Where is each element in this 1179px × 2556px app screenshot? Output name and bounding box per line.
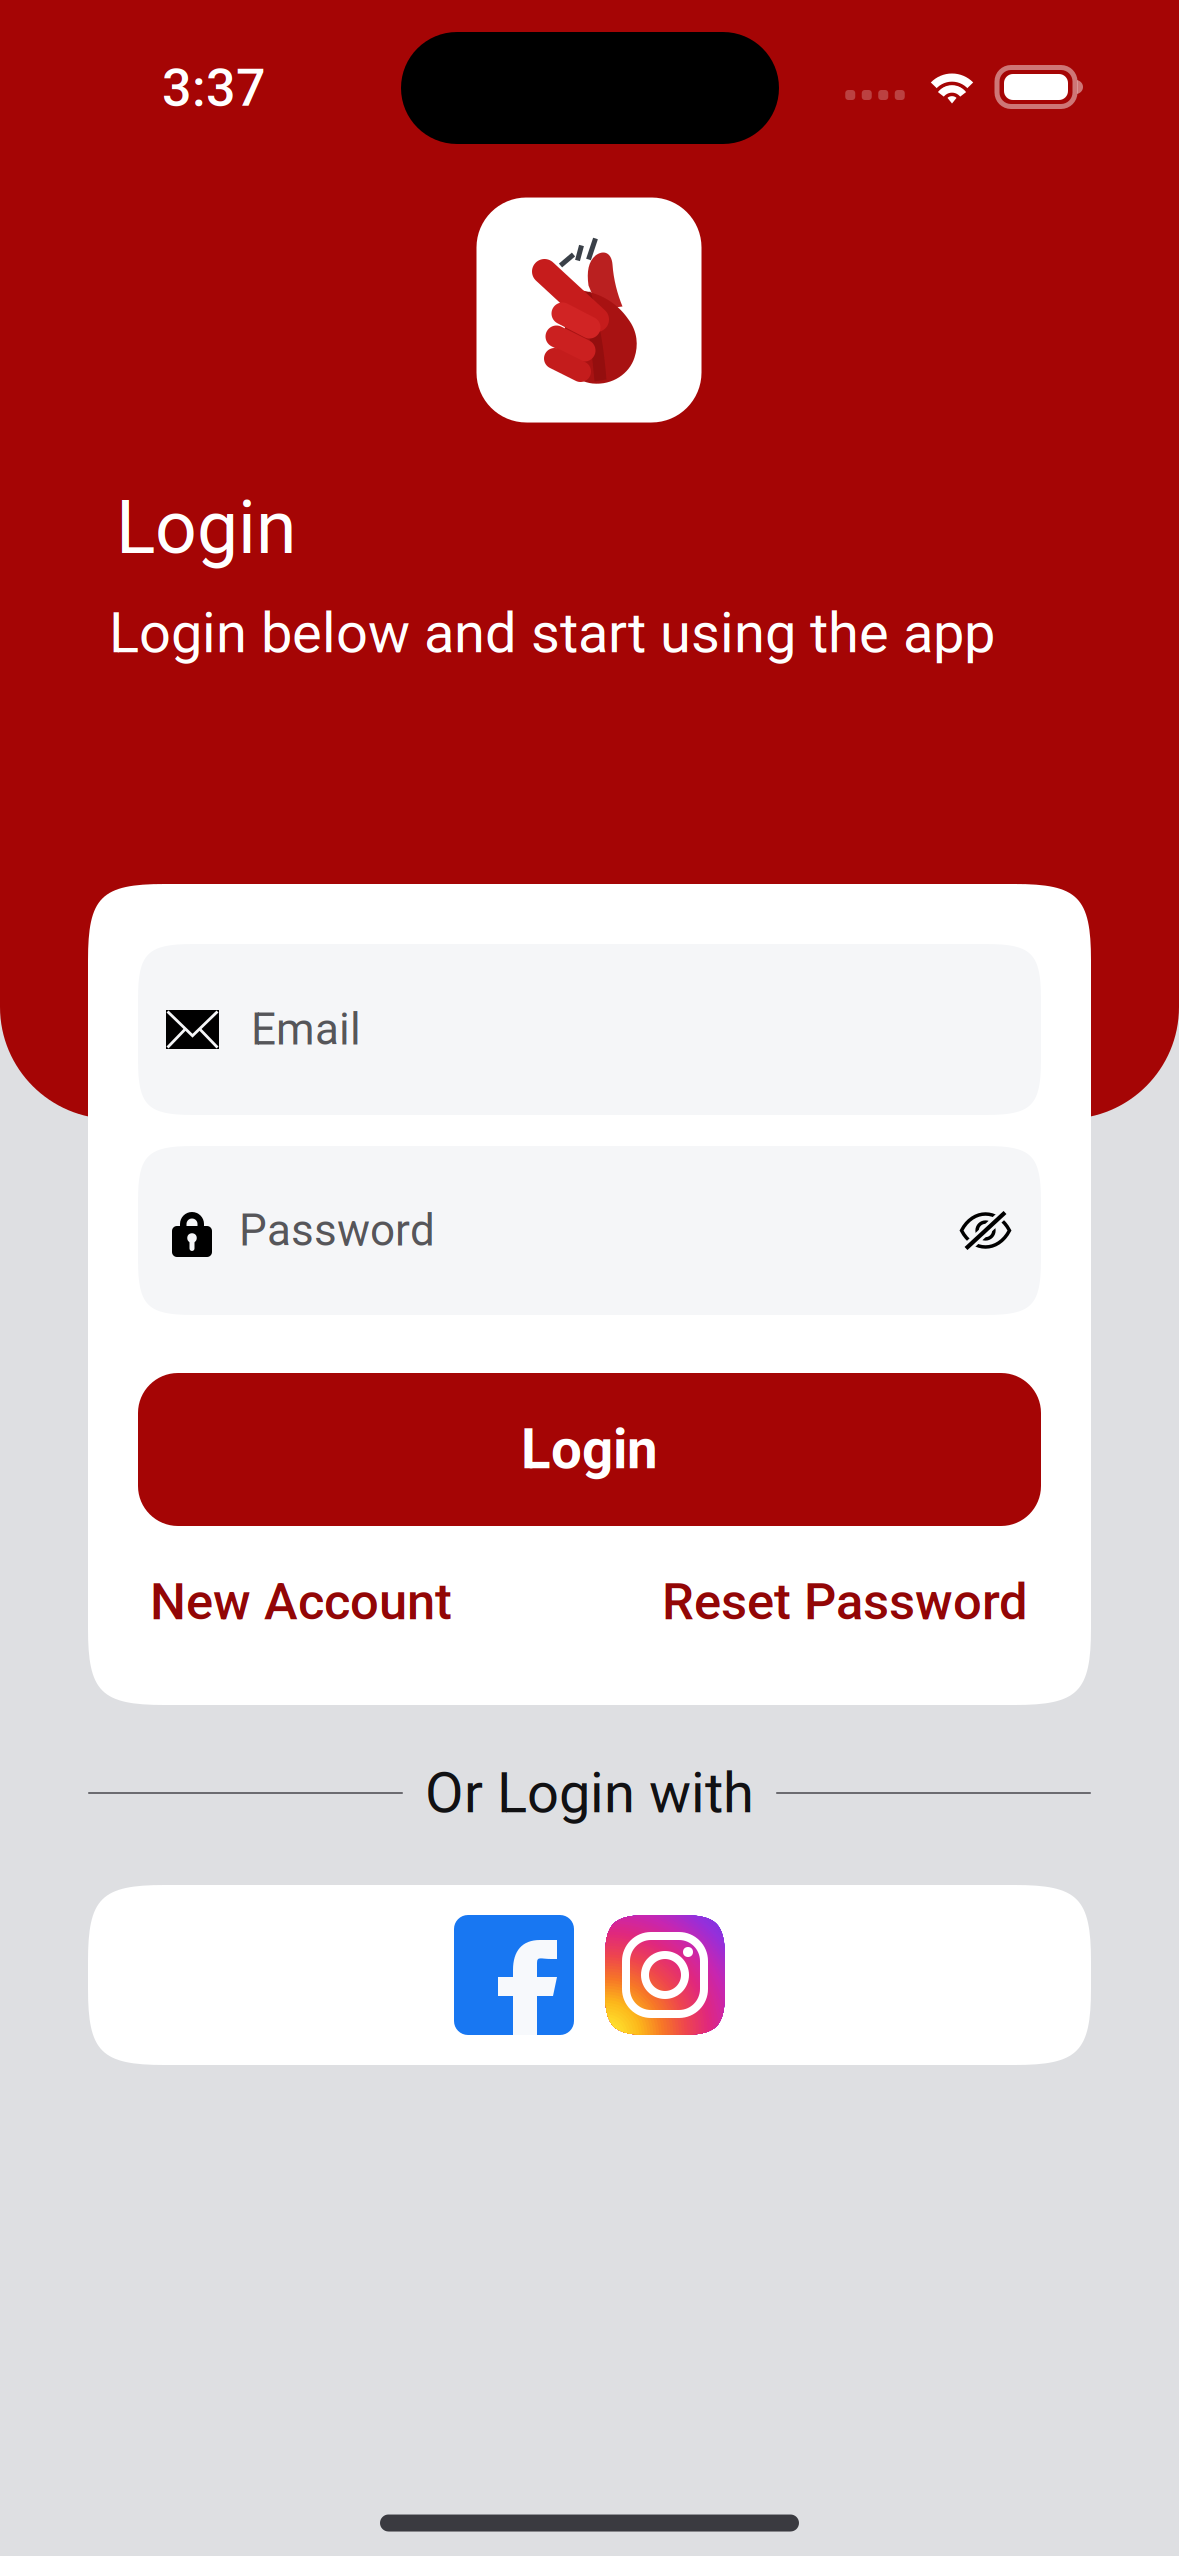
staticText: Login	[116, 485, 296, 571]
button[interactable]: Log in with Instagram	[605, 1915, 725, 2035]
staticText: Password	[239, 1205, 435, 1256]
button[interactable]: Login	[138, 1373, 1041, 1526]
staticText: Or Login with	[425, 1760, 754, 1826]
staticText: New Account	[150, 1572, 452, 1632]
button[interactable]: Reset Password	[662, 1572, 1028, 1632]
staticText: Login below and start using the app	[109, 600, 995, 666]
button[interactable]: Show password	[959, 1208, 1041, 1252]
staticText: 3:37	[162, 57, 266, 118]
button[interactable]: Log in with Facebook	[454, 1915, 574, 2035]
button[interactable]: New Account	[150, 1572, 452, 1632]
staticText: Reset Password	[662, 1572, 1028, 1632]
staticText: Login	[521, 1417, 658, 1482]
staticText: Email	[251, 1004, 361, 1055]
